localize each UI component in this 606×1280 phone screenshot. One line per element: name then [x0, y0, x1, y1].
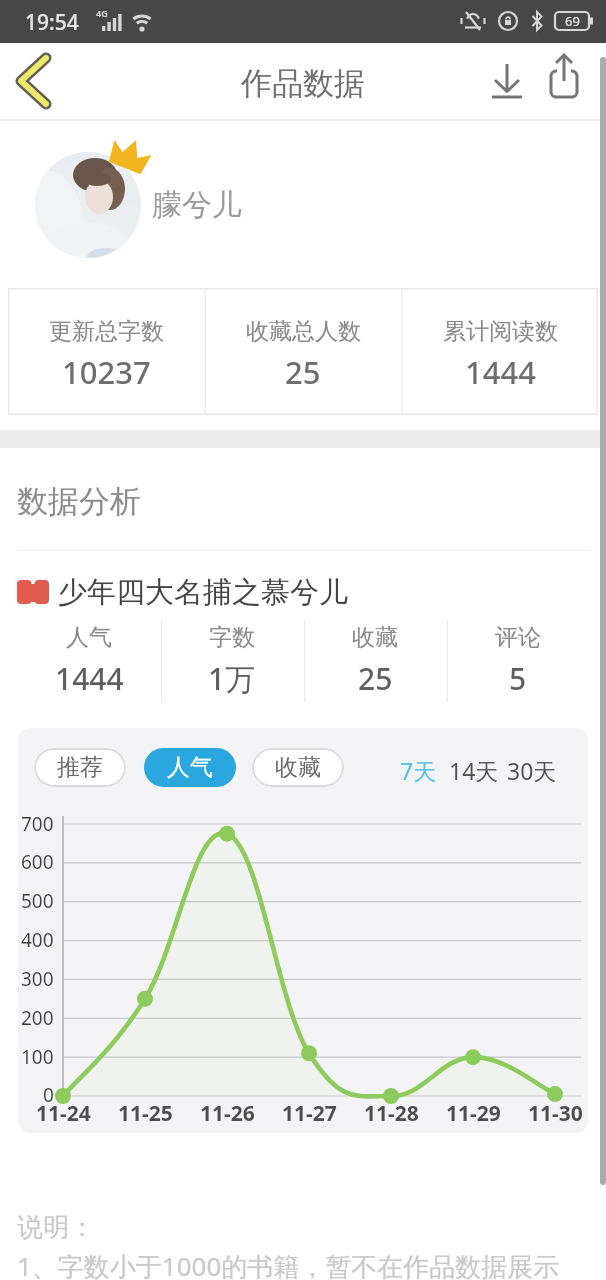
- staticText: 100: [21, 1044, 54, 1070]
- staticText: 少年四大名捕之慕兮儿: [58, 574, 348, 611]
- staticText: 说明：: [17, 1211, 95, 1244]
- staticText: 字数: [209, 623, 255, 652]
- staticText: 累计阅读数: [443, 317, 558, 346]
- button[interactable]: 推荐: [34, 748, 126, 787]
- staticText: 11-28: [364, 1099, 419, 1128]
- staticText: 人气: [66, 623, 112, 652]
- staticText: 10237: [62, 351, 151, 393]
- staticText: 11-26: [200, 1099, 255, 1128]
- staticText: 数据分析: [17, 482, 141, 521]
- staticText: 11-25: [118, 1099, 173, 1128]
- staticText: 30天: [507, 755, 557, 786]
- button[interactable]: [542, 51, 586, 103]
- staticText: 1万: [208, 658, 256, 699]
- staticText: 1、字数小于1000的书籍，暂不在作品数据展示: [17, 1248, 560, 1280]
- staticText: 14天: [449, 755, 499, 786]
- staticText: 500: [21, 888, 54, 914]
- staticText: 1444: [465, 351, 536, 393]
- staticText: 收藏: [352, 623, 398, 652]
- button[interactable]: [17, 568, 582, 614]
- button[interactable]: 人气: [144, 748, 236, 787]
- staticText: 收藏: [275, 753, 321, 782]
- staticText: 收藏总人数: [246, 317, 361, 346]
- staticText: 朦兮儿: [152, 186, 242, 224]
- button[interactable]: 7天: [388, 748, 448, 792]
- staticText: 19:54: [25, 8, 79, 37]
- staticText: 0: [43, 1082, 54, 1108]
- staticText: 11-27: [282, 1099, 337, 1128]
- staticText: 200: [21, 1005, 54, 1031]
- staticText: 700: [21, 811, 54, 837]
- button[interactable]: 14天: [441, 748, 507, 792]
- staticText: 7天: [400, 755, 437, 786]
- staticText: 69: [565, 12, 580, 30]
- staticText: 更新总字数: [49, 317, 164, 346]
- staticText: 25: [285, 351, 321, 393]
- staticText: 作品数据: [241, 64, 365, 103]
- staticText: 25: [358, 658, 393, 699]
- staticText: 400: [21, 927, 54, 953]
- button[interactable]: 收藏: [252, 748, 344, 787]
- staticText: 11-30: [528, 1099, 583, 1128]
- staticText: 11-24: [36, 1099, 91, 1128]
- button[interactable]: 30天: [499, 748, 565, 792]
- staticText: 1444: [55, 658, 124, 699]
- staticText: 11-29: [446, 1099, 501, 1128]
- staticText: 评论: [495, 623, 541, 652]
- staticText: 推荐: [57, 753, 103, 782]
- button[interactable]: [12, 53, 68, 109]
- staticText: 300: [21, 966, 54, 992]
- button[interactable]: [35, 152, 141, 258]
- staticText: 4G: [96, 7, 108, 19]
- staticText: 5: [509, 658, 527, 699]
- button[interactable]: [486, 61, 530, 105]
- staticText: 600: [21, 849, 54, 875]
- staticText: 人气: [167, 753, 213, 782]
